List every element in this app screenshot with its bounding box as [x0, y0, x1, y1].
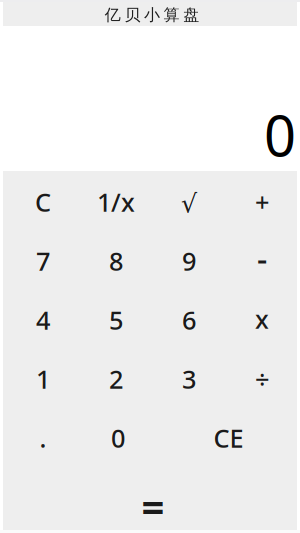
- button[interactable]: 9: [152, 231, 225, 290]
- staticText: C: [35, 185, 51, 219]
- staticText: 1/x: [97, 185, 135, 219]
- staticText: 0: [111, 421, 125, 455]
- button[interactable]: 5: [79, 290, 152, 349]
- staticText: x: [255, 302, 269, 336]
- button[interactable]: √: [152, 172, 225, 231]
- button[interactable]: x: [225, 290, 298, 349]
- staticText: ÷: [255, 362, 269, 396]
- button[interactable]: -: [225, 231, 298, 290]
- staticText: 3: [182, 362, 196, 396]
- staticText: 2: [109, 362, 123, 396]
- button[interactable]: 8: [79, 231, 152, 290]
- button[interactable]: C: [6, 172, 79, 231]
- button[interactable]: 6: [152, 290, 225, 349]
- button[interactable]: 1/x: [79, 172, 152, 231]
- staticText: 9: [182, 244, 196, 278]
- staticText: 6: [182, 303, 196, 337]
- button[interactable]: =: [6, 467, 298, 533]
- staticText: +: [255, 185, 269, 219]
- staticText: 8: [109, 244, 123, 278]
- button[interactable]: CE: [152, 408, 298, 467]
- button[interactable]: 2: [79, 349, 152, 408]
- staticText: 5: [109, 303, 123, 337]
- staticText: -: [257, 237, 267, 279]
- staticText: 1: [36, 362, 50, 396]
- button[interactable]: ÷: [225, 349, 298, 408]
- button[interactable]: 4: [6, 290, 79, 349]
- button[interactable]: 3: [152, 349, 225, 408]
- staticText: 7: [36, 244, 50, 278]
- button[interactable]: .: [6, 408, 79, 467]
- button[interactable]: 0: [79, 408, 152, 467]
- staticText: 亿贝小算盘: [105, 5, 199, 25]
- button[interactable]: +: [225, 172, 298, 231]
- staticText: .: [39, 421, 46, 455]
- button[interactable]: 1: [6, 349, 79, 408]
- staticText: CE: [213, 421, 243, 455]
- staticText: 4: [36, 303, 50, 337]
- staticText: 0: [264, 98, 296, 172]
- button[interactable]: 7: [6, 231, 79, 290]
- staticText: √: [181, 189, 197, 218]
- staticText: =: [141, 480, 164, 533]
